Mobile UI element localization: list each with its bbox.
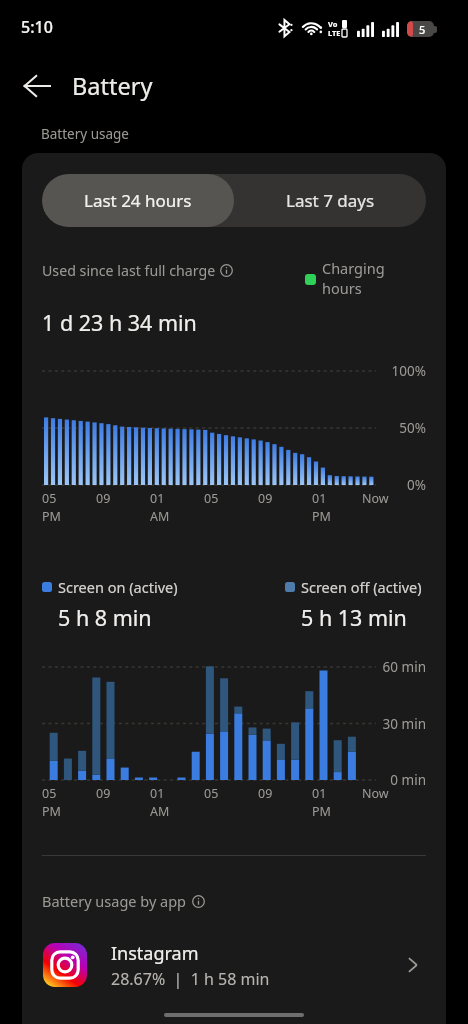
staticText: Now: [362, 490, 389, 507]
staticText: Battery usage: [41, 125, 129, 143]
staticText: 05: [204, 785, 219, 802]
staticText: 5:10: [21, 16, 53, 38]
staticText: 30 min: [382, 715, 426, 733]
button[interactable]: Last 7 days: [234, 174, 426, 227]
staticText: 01 AM: [150, 490, 170, 524]
staticText: 5: [419, 22, 426, 37]
staticText: 50%: [399, 419, 426, 437]
staticText: 0 min: [390, 771, 426, 789]
staticText: 01 PM: [312, 785, 331, 819]
staticText: 100%: [391, 362, 426, 380]
staticText: 05: [204, 490, 219, 507]
staticText: 5 h 13 min: [301, 603, 407, 632]
staticText: Charging hours: [322, 258, 385, 299]
staticText: Now: [362, 785, 389, 802]
staticText: 09: [96, 490, 111, 507]
staticText: 1 d 23 h 34 min: [42, 308, 197, 337]
staticText: Last 24 hours: [84, 189, 192, 212]
staticText: Screen on (active): [58, 577, 178, 597]
staticText: Instagram: [111, 941, 199, 966]
button[interactable]: Instagram: [22, 933, 446, 997]
staticText: 60 min: [382, 658, 426, 676]
staticText: 01 PM: [312, 490, 331, 524]
staticText: 05 PM: [42, 785, 61, 819]
staticText: 01 AM: [150, 785, 170, 819]
staticText: Battery usage by app: [42, 891, 187, 911]
staticText: 05 PM: [42, 490, 61, 524]
staticText: Used since last full charge: [42, 261, 216, 280]
staticText: 28.67% | 1 h 58 min: [111, 968, 270, 990]
staticText: 09: [258, 490, 273, 507]
staticText: 5 h 8 min: [58, 603, 152, 632]
staticText: 0%: [407, 476, 426, 494]
staticText: 09: [96, 785, 111, 802]
staticText: 09: [258, 785, 273, 802]
staticText: Screen off (active): [301, 577, 422, 597]
button[interactable]: Last 24 hours: [42, 174, 234, 227]
staticText: LTE: [328, 28, 341, 38]
staticText: Battery: [72, 70, 153, 102]
staticText: Vo: [328, 19, 338, 29]
button[interactable]: Back: [13, 62, 61, 110]
staticText: Last 7 days: [286, 189, 375, 212]
